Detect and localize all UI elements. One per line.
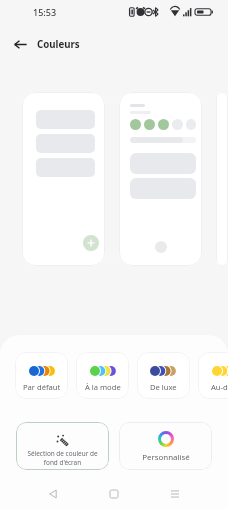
button[interactable]: Au-delà (198, 352, 228, 399)
button[interactable]: Sélection de couleur de fond d'écran (16, 422, 109, 470)
staticText: Personnalisé (142, 452, 190, 463)
staticText: De luxe (150, 382, 177, 392)
button[interactable] (119, 92, 202, 266)
button[interactable]: Personnalisé (119, 422, 212, 470)
staticText: Sélection de couleur de fond d'écran (26, 449, 99, 467)
button[interactable]: Home (97, 479, 131, 509)
button[interactable]: Back (5, 29, 36, 60)
staticText: À la mode (85, 382, 121, 392)
button[interactable]: Back (36, 479, 70, 509)
button[interactable]: De luxe (137, 352, 190, 399)
staticText: Au-delà (211, 382, 228, 392)
button[interactable]: À la mode (76, 352, 129, 399)
button[interactable] (22, 92, 105, 266)
staticText: 15:53 (33, 6, 57, 18)
button[interactable]: Recents (158, 479, 192, 509)
button[interactable]: Par défaut (15, 352, 68, 399)
staticText: Par défaut (23, 382, 61, 392)
staticText: Couleurs (37, 38, 80, 51)
button[interactable] (216, 92, 228, 266)
